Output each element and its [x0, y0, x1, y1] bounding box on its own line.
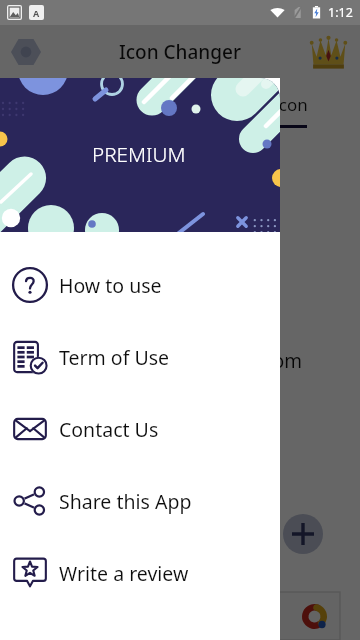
- staticText: Theme: [62, 93, 118, 116]
- button[interactable]: Add icon: [283, 514, 323, 554]
- button[interactable]: Term of Use: [0, 321, 280, 393]
- staticText: Contact Us: [59, 416, 159, 443]
- button[interactable]: How to use: [0, 249, 280, 321]
- staticText: Custom: [233, 348, 302, 374]
- button[interactable]: Advertisement: [20, 592, 340, 640]
- button[interactable]: Theme: [0, 78, 180, 125]
- staticText: Share this App: [59, 488, 192, 515]
- staticText: Write a review: [59, 560, 189, 587]
- staticText: Term of Use: [59, 344, 169, 371]
- button[interactable]: Premium: [309, 33, 347, 71]
- staticText: Icon: [273, 93, 308, 116]
- staticText: How to use: [59, 272, 162, 299]
- staticText: A: [33, 7, 40, 19]
- staticText: Icon Changer: [119, 39, 241, 65]
- button[interactable]: Icon: [180, 78, 360, 125]
- staticText: PREMIUM: [92, 140, 186, 168]
- staticText: 1:12: [328, 4, 353, 21]
- button[interactable]: Contact Us: [0, 393, 280, 465]
- button[interactable]: Share this App: [0, 465, 280, 537]
- button[interactable]: Write a review: [0, 537, 280, 609]
- button[interactable]: Open navigation drawer: [8, 34, 44, 70]
